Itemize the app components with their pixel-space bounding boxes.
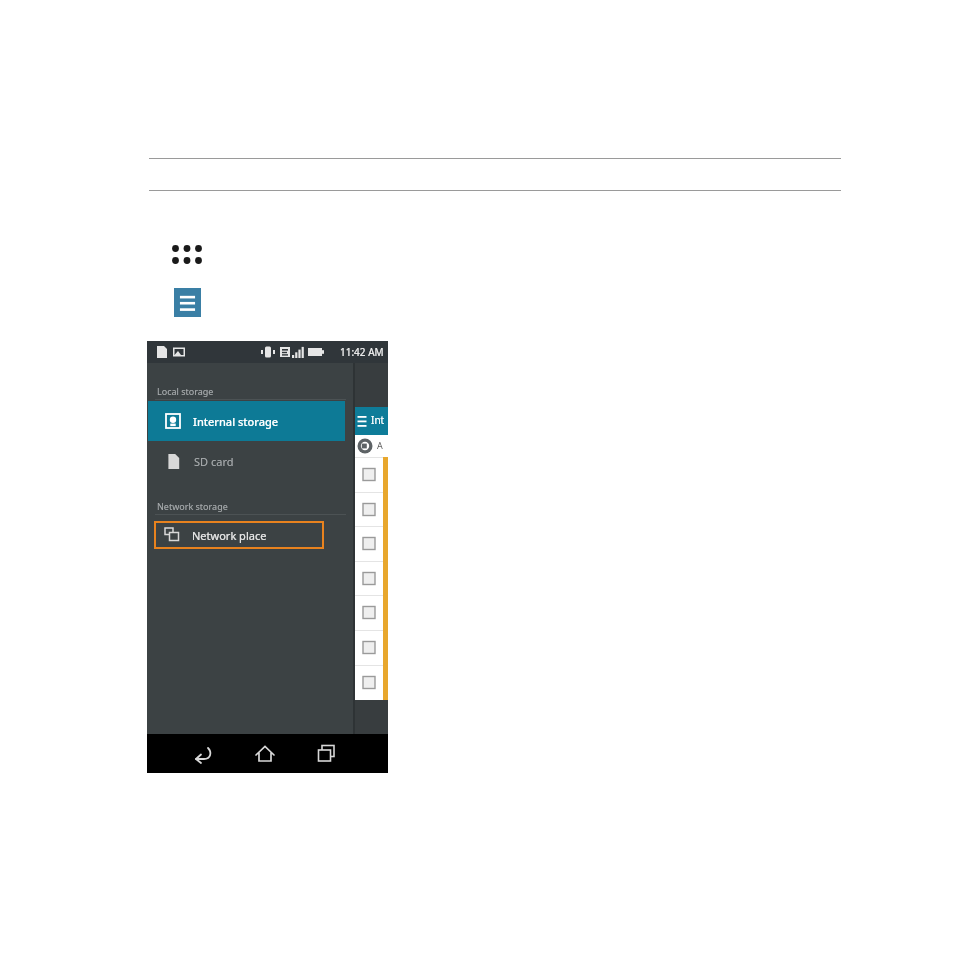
button[interactable]: Recent apps <box>315 742 339 766</box>
button[interactable]: Network place <box>154 521 324 549</box>
staticText: Local storage <box>157 385 214 397</box>
button[interactable]: Menu <box>174 288 201 317</box>
staticText: A <box>377 439 383 451</box>
button[interactable]: Back <box>191 742 215 766</box>
staticText: Network place <box>192 528 267 543</box>
button[interactable]: Home <box>253 742 277 766</box>
button[interactable]: SD card <box>148 441 345 481</box>
staticText: 11:42 AM <box>340 345 384 359</box>
staticText: Network storage <box>157 500 228 512</box>
button[interactable]: Apps <box>171 243 205 267</box>
staticText: SD card <box>194 454 234 469</box>
button[interactable]: Internal storage <box>148 401 345 441</box>
staticText: Internal storage <box>193 414 279 429</box>
staticText: Int <box>371 413 385 427</box>
